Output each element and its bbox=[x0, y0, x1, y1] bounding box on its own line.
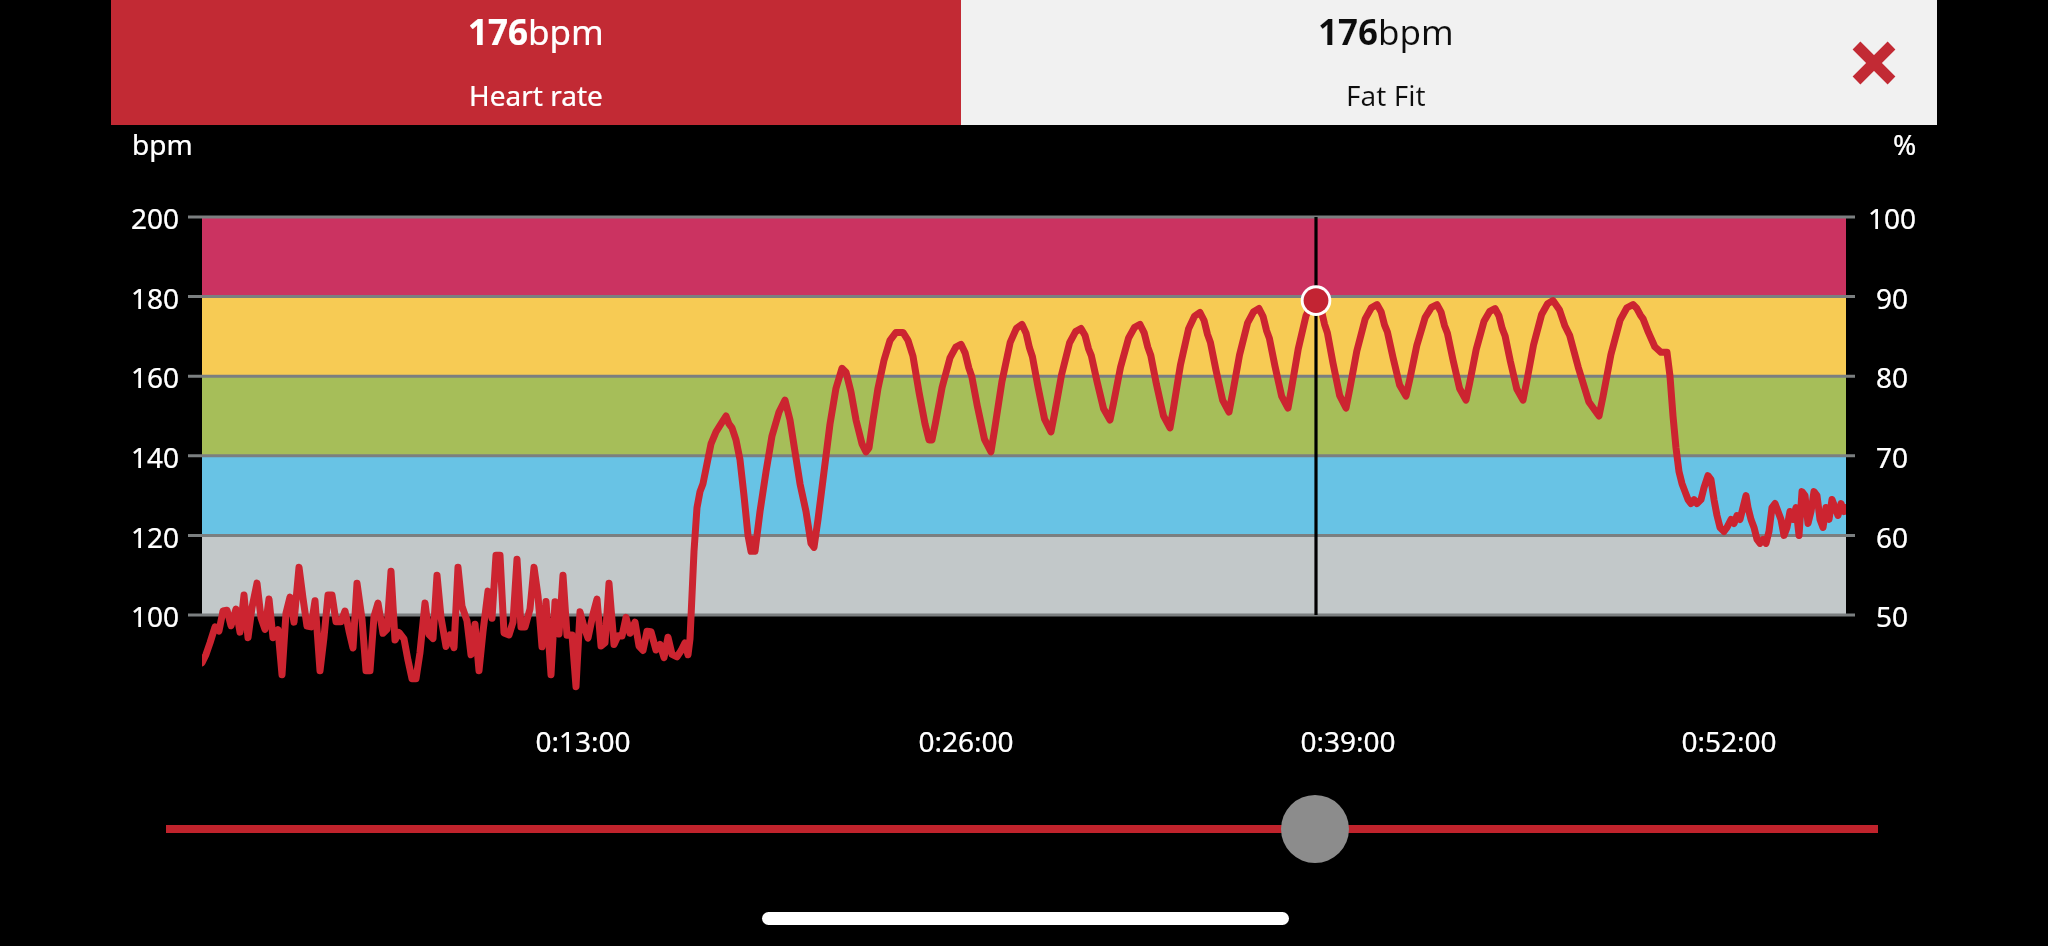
staticText: 0:13:00 bbox=[463, 722, 703, 760]
staticText: 176bpm bbox=[1318, 8, 1454, 56]
staticText: 180 bbox=[99, 279, 179, 317]
staticText: 0:39:00 bbox=[1228, 722, 1468, 760]
staticText: 0:52:00 bbox=[1609, 722, 1849, 760]
staticText: 120 bbox=[99, 518, 179, 556]
staticText: 0:26:00 bbox=[846, 722, 1086, 760]
button[interactable]: 176bpm bbox=[111, 0, 961, 125]
staticText: 176bpm bbox=[468, 8, 604, 56]
staticText: 50 bbox=[1852, 597, 1932, 635]
staticText: % bbox=[1893, 125, 1917, 163]
button[interactable]: Timeline position slider bbox=[150, 795, 1900, 865]
staticText: 140 bbox=[99, 438, 179, 476]
staticText: 60 bbox=[1852, 518, 1932, 556]
staticText: 90 bbox=[1852, 279, 1932, 317]
staticText: 80 bbox=[1852, 358, 1932, 396]
staticText: 70 bbox=[1852, 438, 1932, 476]
staticText: 160 bbox=[99, 358, 179, 396]
button[interactable]: Close bbox=[1816, 5, 1932, 121]
staticText: Fat Fit bbox=[1346, 76, 1426, 114]
staticText: 100 bbox=[1852, 199, 1932, 237]
staticText: Heart rate bbox=[469, 76, 603, 114]
staticText: 200 bbox=[99, 199, 179, 237]
staticText: bpm bbox=[132, 125, 193, 163]
button[interactable]: 176bpm bbox=[961, 0, 1810, 125]
staticText: 100 bbox=[99, 597, 179, 635]
